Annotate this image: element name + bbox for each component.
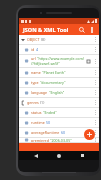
button[interactable]: Back: [30, 151, 42, 160]
staticText: genres: [27, 100, 39, 105]
staticText: url: [31, 56, 36, 61]
button[interactable]: name: [19, 68, 99, 78]
staticText: language: [31, 90, 48, 95]
staticText: 50: [46, 120, 51, 125]
staticText: /?fdfjkswef-sw5f": [31, 61, 60, 66]
staticText: "Ended": [43, 110, 57, 115]
button[interactable]: Row options: [93, 45, 97, 54]
button[interactable]: status: [19, 108, 99, 118]
button[interactable]: Row options: [93, 128, 97, 137]
staticText: averageRuntime: [31, 130, 60, 135]
staticText: JSON & XML Tool: [23, 26, 69, 33]
staticText: OBJECT: [27, 37, 40, 42]
staticText: 4: [36, 47, 39, 52]
staticText: status: [31, 110, 42, 115]
button[interactable]: Row options: [93, 78, 97, 87]
button[interactable]: More options: [87, 25, 96, 34]
button[interactable]: Recent apps: [76, 151, 88, 160]
button[interactable]: Row options: [93, 55, 97, 67]
button[interactable]: Row options: [93, 88, 97, 97]
button[interactable]: Row options: [93, 98, 97, 107]
staticText: "Planet Earth": [42, 70, 66, 75]
button[interactable]: OBJECT: [19, 35, 99, 45]
button[interactable]: Row options: [93, 35, 97, 44]
button[interactable]: url: [19, 55, 99, 68]
staticText: name: [31, 70, 41, 75]
button[interactable]: id: [19, 45, 99, 55]
button[interactable]: Row options: [93, 108, 97, 117]
staticText: runtime: [31, 120, 45, 125]
staticText: id: [31, 47, 35, 52]
button[interactable]: Home: [53, 151, 65, 160]
button[interactable]: Row options: [93, 118, 97, 127]
button[interactable]: averageRuntime: [19, 128, 99, 138]
button[interactable]: type: [19, 78, 99, 88]
staticText: (1): [40, 100, 45, 105]
staticText: "documentary": [40, 80, 66, 85]
staticText: 60: [61, 130, 66, 135]
staticText: type: [31, 80, 39, 85]
staticText: "English": [49, 90, 65, 95]
button[interactable]: Row options: [93, 68, 97, 77]
staticText: (8): [41, 37, 46, 42]
button[interactable]: premiered: [19, 138, 99, 143]
button[interactable]: language: [19, 88, 99, 98]
button[interactable]: Add: [84, 129, 95, 140]
staticText: premiered: [31, 138, 49, 142]
button[interactable]: genres: [19, 98, 99, 108]
button[interactable]: runtime: [19, 118, 99, 128]
button[interactable]: Open link: [86, 59, 91, 64]
button[interactable]: Row options: [93, 138, 97, 142]
staticText: "https://www.example.com/share: [37, 56, 86, 61]
button[interactable]: Search: [77, 25, 86, 34]
staticText: "2006-03-05": [50, 138, 72, 142]
